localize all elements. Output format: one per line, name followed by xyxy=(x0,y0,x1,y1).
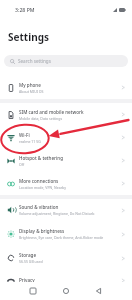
staticText: About MIUI OS xyxy=(19,89,44,94)
staticText: Storage xyxy=(19,252,37,258)
staticText: My phone xyxy=(19,82,41,88)
button[interactable]: Back xyxy=(82,282,115,300)
staticText: Sound & vibration xyxy=(19,204,59,210)
staticText: 3:28 PM xyxy=(15,6,35,13)
button[interactable]: Recents xyxy=(16,282,49,300)
button[interactable]: Privacy xyxy=(0,269,132,291)
button[interactable]: Hotspot & tethering xyxy=(0,149,132,172)
button[interactable]: My phone xyxy=(0,76,132,99)
staticText: Off xyxy=(19,162,25,167)
button[interactable]: Display & brightness xyxy=(0,221,132,247)
staticText: Brightness, Eye care, Dark theme, Anti-f… xyxy=(19,235,104,240)
staticText: realme 11 5G xyxy=(19,139,41,144)
staticText: Privacy xyxy=(19,277,35,283)
staticText: More connections xyxy=(19,178,59,184)
staticText: Location mode, VPN, Nearby xyxy=(19,185,66,190)
button[interactable]: Storage xyxy=(0,247,132,269)
staticText: SIM card and mobile network xyxy=(19,109,84,115)
button[interactable]: Wi-Fi xyxy=(0,126,132,149)
button[interactable]: Home xyxy=(49,282,82,300)
staticText: Hotspot & tethering xyxy=(19,155,64,161)
staticText: Volume adjustment, Ringtone, Do Not Dist… xyxy=(19,211,95,216)
button[interactable]: Sound & vibration xyxy=(0,199,132,221)
staticText: Search settings xyxy=(18,58,51,64)
staticText: Settings xyxy=(8,30,49,44)
staticText: Wi-Fi xyxy=(19,132,30,138)
staticText: Display & brightness xyxy=(19,228,65,234)
button[interactable]: SIM card and mobile network xyxy=(0,103,132,126)
staticText: 56.55 GB used xyxy=(19,259,43,264)
button[interactable]: More connections xyxy=(0,172,132,195)
button[interactable]: Search settings xyxy=(4,55,128,67)
staticText: Mobile data, Data settings xyxy=(19,116,63,121)
